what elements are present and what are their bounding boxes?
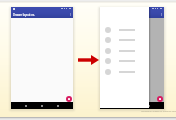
button[interactable] xyxy=(100,66,149,77)
button[interactable] xyxy=(100,24,149,35)
button[interactable] xyxy=(100,55,149,66)
staticText: Drawer layout ex. xyxy=(13,13,35,17)
button[interactable]: Add xyxy=(157,96,163,102)
button[interactable] xyxy=(100,34,149,45)
button[interactable]: Add xyxy=(66,96,72,102)
button[interactable] xyxy=(100,45,149,56)
staticText: navigation drawer in material design xyxy=(141,110,176,113)
